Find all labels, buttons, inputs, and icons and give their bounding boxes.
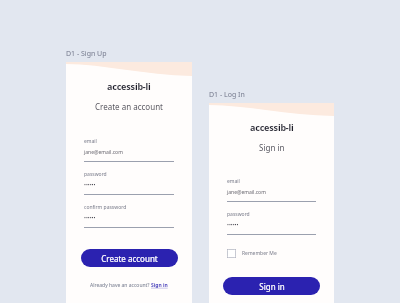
button[interactable]: Remember Me <box>227 249 316 258</box>
staticText: Already have an account? <box>90 282 151 289</box>
staticText: •••••• <box>84 182 96 189</box>
staticText: •••••• <box>227 222 239 229</box>
staticText: D1 - Sign Up <box>66 49 107 59</box>
button[interactable]: Sign in <box>223 277 320 295</box>
staticText: •••••• <box>84 215 96 222</box>
staticText: Create account <box>101 253 158 264</box>
staticText: email <box>227 178 240 185</box>
staticText: Sign in <box>259 281 285 292</box>
staticText: confirm password <box>84 204 127 211</box>
staticText: jane@email.com <box>84 149 123 156</box>
button[interactable]: Sign in <box>151 282 168 289</box>
staticText: accessib-li <box>107 80 151 92</box>
staticText: password <box>84 171 107 178</box>
staticText: Create an account <box>95 101 163 112</box>
staticText: Sign in <box>259 142 285 153</box>
staticText: accessib-li <box>250 121 294 133</box>
staticText: email <box>84 138 97 145</box>
staticText: Sign in <box>151 282 168 289</box>
button[interactable]: Create account <box>81 249 178 267</box>
staticText: D1 - Log In <box>209 90 245 100</box>
staticText: password <box>227 211 250 218</box>
staticText: Remember Me <box>242 250 277 257</box>
staticText: jane@email.com <box>227 189 266 196</box>
